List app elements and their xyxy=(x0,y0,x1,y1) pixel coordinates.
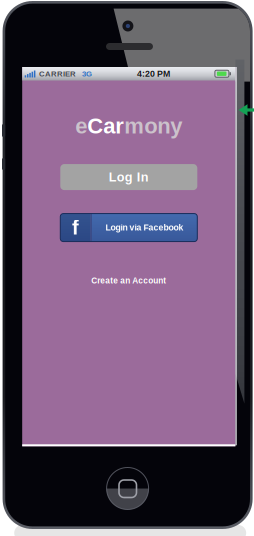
button[interactable]: f xyxy=(60,214,197,242)
button[interactable]: Log In xyxy=(60,164,197,190)
staticText: Login via Facebook xyxy=(105,223,183,232)
staticText: 4:20 PM xyxy=(137,69,170,79)
staticText: f xyxy=(72,216,79,239)
staticText: CARRIER xyxy=(39,69,76,78)
staticText: Car xyxy=(87,113,124,138)
staticText: Create an Account xyxy=(91,276,166,285)
staticText: Log In xyxy=(109,170,149,184)
staticText: 3G xyxy=(82,69,92,78)
button[interactable]: Create an Account xyxy=(74,275,184,287)
staticText: e xyxy=(75,113,87,138)
staticText: mony xyxy=(124,113,182,138)
